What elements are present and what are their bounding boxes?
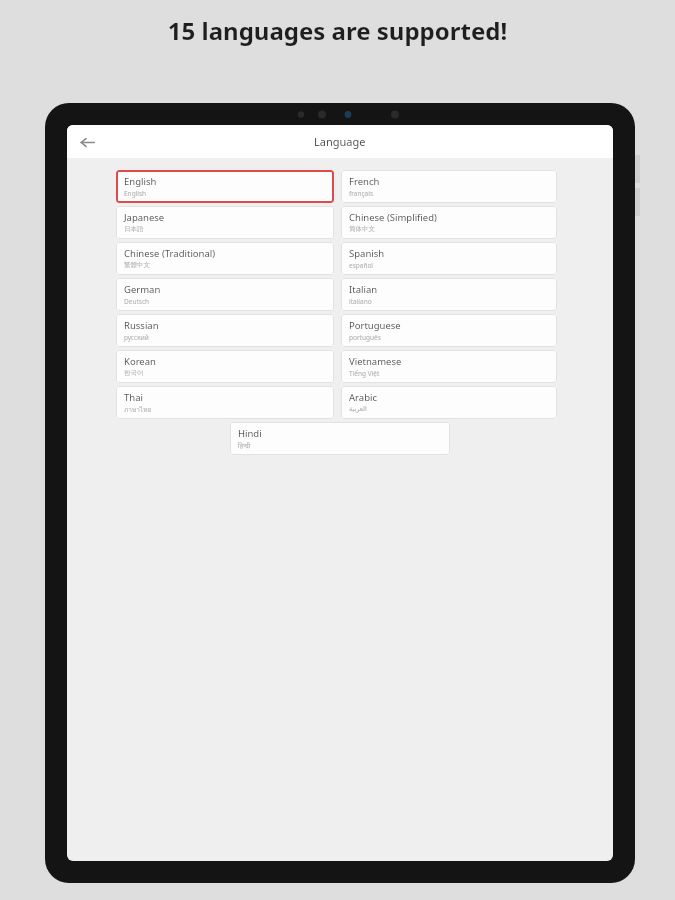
staticText: Korean <box>124 355 156 368</box>
button[interactable]: Korean <box>116 350 334 383</box>
staticText: العربية <box>349 405 367 413</box>
staticText: Hindi <box>238 427 262 440</box>
staticText: 繁體中文 <box>124 261 150 269</box>
button[interactable]: Spanish <box>341 242 557 275</box>
button[interactable]: French <box>341 170 557 203</box>
staticText: Vietnamese <box>349 355 402 368</box>
staticText: Spanish <box>349 247 385 260</box>
staticText: Russian <box>124 319 159 332</box>
staticText: Chinese (Simplified) <box>349 211 437 224</box>
staticText: 简体中文 <box>349 225 375 233</box>
staticText: हिन्दी <box>238 441 251 450</box>
staticText: English <box>124 175 157 188</box>
staticText: 15 languages are supported! <box>0 14 675 47</box>
button[interactable]: English <box>116 170 334 203</box>
button[interactable]: German <box>116 278 334 311</box>
button[interactable]: Back <box>73 128 101 156</box>
button[interactable]: Russian <box>116 314 334 347</box>
staticText: Language <box>314 134 366 149</box>
staticText: Japanese <box>124 211 165 224</box>
staticText: Deutsch <box>124 297 150 306</box>
button[interactable]: Japanese <box>116 206 334 239</box>
staticText: español <box>349 261 374 270</box>
staticText: français <box>349 189 374 198</box>
button[interactable]: Arabic <box>341 386 557 419</box>
button[interactable]: Chinese (Simplified) <box>341 206 557 239</box>
button[interactable]: Vietnamese <box>341 350 557 383</box>
staticText: Portuguese <box>349 319 401 332</box>
staticText: Tiếng Việt <box>349 369 380 378</box>
staticText: Thai <box>124 391 143 404</box>
staticText: Arabic <box>349 391 377 404</box>
button[interactable]: Hindi <box>230 422 450 455</box>
staticText: 한국어 <box>124 369 144 377</box>
button[interactable]: Thai <box>116 386 334 419</box>
button[interactable]: Portuguese <box>341 314 557 347</box>
staticText: ภาษาไทย <box>124 405 152 415</box>
staticText: German <box>124 283 161 296</box>
staticText: italiano <box>349 297 372 306</box>
staticText: português <box>349 333 381 342</box>
staticText: 日本語 <box>124 225 144 233</box>
staticText: русский <box>124 333 149 342</box>
staticText: Chinese (Traditional) <box>124 247 216 260</box>
button[interactable]: Chinese (Traditional) <box>116 242 334 275</box>
staticText: Italian <box>349 283 378 296</box>
staticText: French <box>349 175 380 188</box>
button[interactable]: Italian <box>341 278 557 311</box>
staticText: English <box>124 189 147 198</box>
